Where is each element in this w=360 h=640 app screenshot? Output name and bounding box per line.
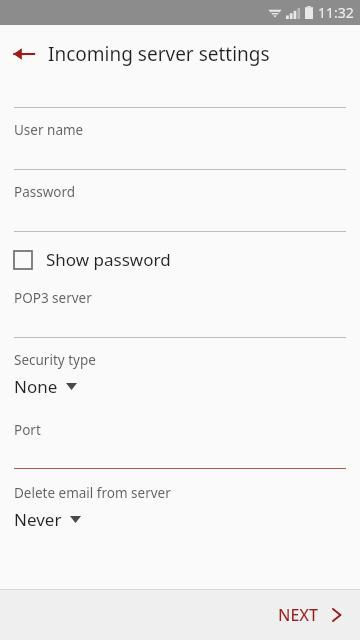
staticText: Security type	[14, 351, 96, 369]
button[interactable]: Navigate up	[0, 30, 48, 78]
staticText: Delete email from server	[14, 484, 171, 502]
staticText: NEXT	[278, 604, 319, 626]
button[interactable]: Delete email from server	[0, 484, 360, 531]
staticText: Show password	[46, 248, 171, 271]
staticText: None	[14, 375, 58, 398]
button[interactable]: Security type	[0, 351, 360, 398]
staticText: Password	[14, 183, 76, 201]
button[interactable]: User name	[0, 108, 360, 169]
button[interactable]: Password	[0, 170, 360, 231]
staticText: User name	[14, 121, 84, 139]
button[interactable]: NEXT	[260, 594, 360, 636]
button[interactable]: POP3 server	[0, 289, 360, 337]
button[interactable]: Port	[0, 419, 360, 469]
staticText: Incoming server settings	[48, 41, 270, 67]
staticText: Never	[14, 508, 62, 531]
staticText: POP3 server	[14, 289, 92, 307]
staticText: Port	[14, 421, 41, 439]
staticText: 11:32	[318, 3, 354, 22]
button[interactable]: Show password	[0, 242, 360, 277]
